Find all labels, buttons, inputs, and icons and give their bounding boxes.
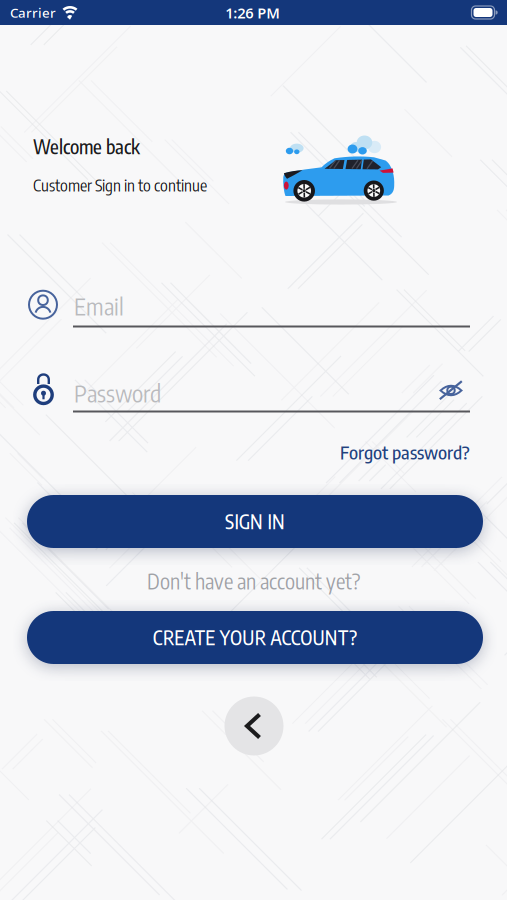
staticText: Password [74,378,161,408]
staticText: Email [74,291,124,321]
staticText: Forgot password? [340,440,470,464]
staticText: Customer Sign in to continue [33,175,207,195]
button[interactable]: Forgot password? [340,440,470,464]
staticText: 1:26 PM [225,3,280,22]
staticText: SIGN IN [225,509,285,534]
button[interactable] [224,696,283,755]
button[interactable]: CREATE YOUR ACCOUNT? [27,611,483,664]
staticText: CREATE YOUR ACCOUNT? [153,625,357,650]
staticText: Carrier [10,4,56,21]
button[interactable] [436,376,466,404]
staticText: Welcome back [33,135,140,158]
button[interactable]: SIGN IN [27,495,483,548]
staticText: Don't have an account yet? [147,568,360,594]
